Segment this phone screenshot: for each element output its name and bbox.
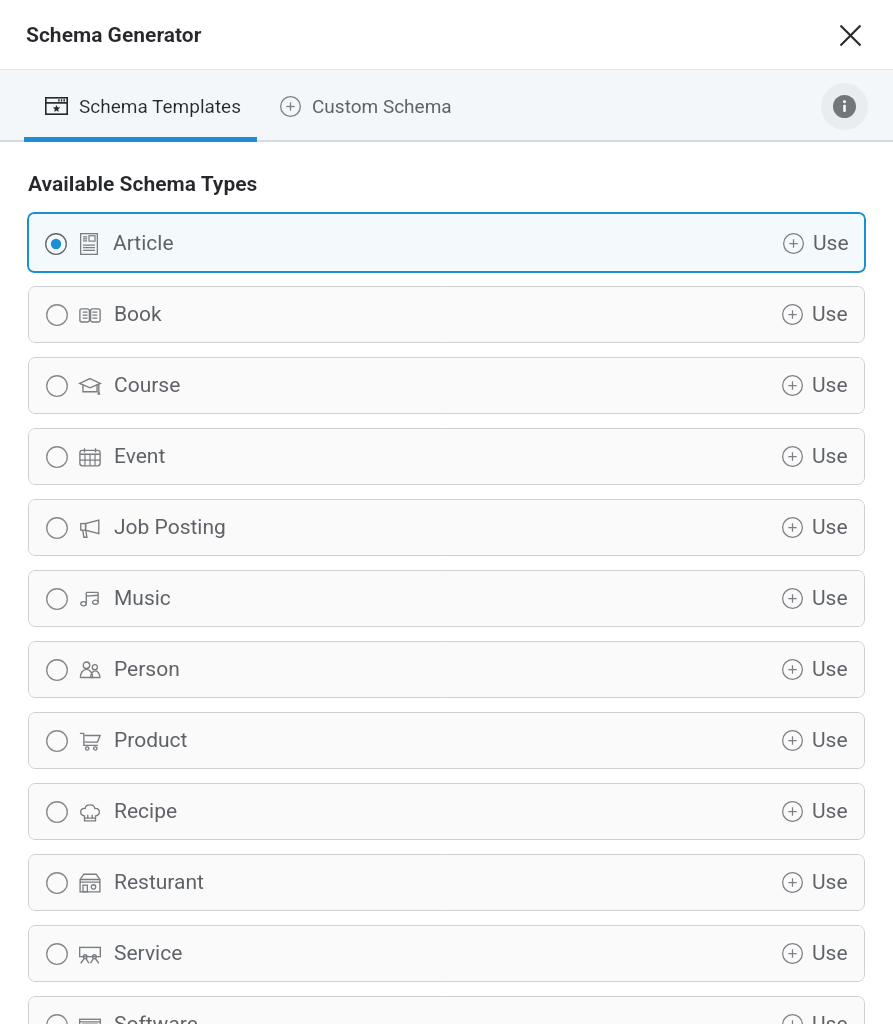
button[interactable]: Close xyxy=(829,14,871,56)
button[interactable]: Resturant xyxy=(28,854,865,911)
staticText: Use xyxy=(812,941,848,966)
staticText: Use xyxy=(812,870,848,895)
staticText: Use xyxy=(812,444,848,469)
staticText: Article xyxy=(113,231,174,256)
button[interactable]: Use xyxy=(774,722,856,759)
staticText: Use xyxy=(812,728,848,753)
staticText: Schema Templates xyxy=(79,95,241,117)
button[interactable]: Book xyxy=(28,286,865,343)
staticText: Available Schema Types xyxy=(28,172,258,197)
button[interactable]: Use xyxy=(774,651,856,688)
button[interactable]: Use xyxy=(774,438,856,475)
staticText: Custom Schema xyxy=(312,95,452,117)
button[interactable]: Event xyxy=(28,428,865,485)
button[interactable]: Use xyxy=(774,509,856,546)
staticText: Job Posting xyxy=(114,515,226,540)
button[interactable]: Person xyxy=(28,641,865,698)
button[interactable]: Use xyxy=(774,1006,856,1024)
staticText: Event xyxy=(114,444,166,469)
staticText: Use xyxy=(812,586,848,611)
staticText: Person xyxy=(114,657,180,682)
staticText: Resturant xyxy=(114,870,204,895)
button[interactable]: Article xyxy=(27,212,866,273)
button[interactable]: Use xyxy=(774,935,856,972)
button[interactable]: Software xyxy=(28,996,865,1024)
staticText: Service xyxy=(114,941,183,966)
staticText: Course xyxy=(114,373,181,398)
staticText: Music xyxy=(114,586,171,611)
staticText: Use xyxy=(813,231,849,256)
button[interactable]: Information xyxy=(821,83,868,130)
staticText: Use xyxy=(812,515,848,540)
button[interactable]: Use xyxy=(774,367,856,404)
button[interactable]: Use xyxy=(774,296,856,333)
button[interactable]: Service xyxy=(28,925,865,982)
staticText: Use xyxy=(812,799,848,824)
button[interactable]: Use xyxy=(774,793,856,830)
button[interactable]: Use xyxy=(774,580,856,617)
staticText: Book xyxy=(114,302,162,327)
button[interactable]: Schema Templates xyxy=(23,85,260,127)
staticText: Schema Generator xyxy=(26,23,202,48)
button[interactable]: Custom Schema xyxy=(260,85,472,127)
staticText: Use xyxy=(812,657,848,682)
button[interactable]: Product xyxy=(28,712,865,769)
button[interactable]: Recipe xyxy=(28,783,865,840)
button[interactable]: Job Posting xyxy=(28,499,865,556)
button[interactable]: Use xyxy=(775,225,857,262)
staticText: Use xyxy=(812,302,848,327)
button[interactable]: Music xyxy=(28,570,865,627)
staticText: Use xyxy=(812,373,848,398)
staticText: Recipe xyxy=(114,799,178,824)
staticText: Product xyxy=(114,728,188,753)
button[interactable]: Course xyxy=(28,357,865,414)
staticText: Use xyxy=(812,1012,848,1024)
staticText: Software xyxy=(114,1012,198,1024)
button[interactable]: Use xyxy=(774,864,856,901)
